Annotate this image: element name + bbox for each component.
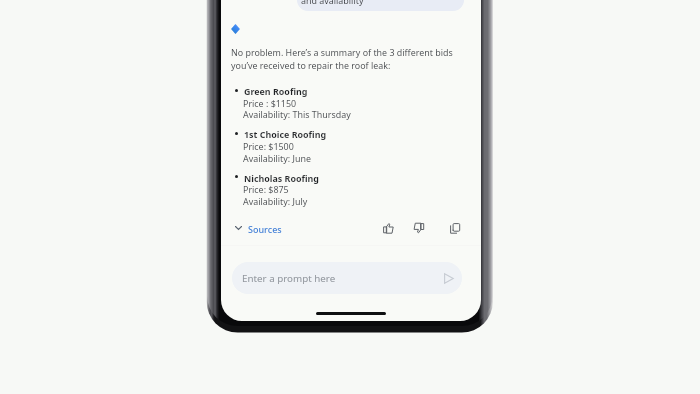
button[interactable]: Thumbs down — [409, 219, 427, 237]
staticText: Sources — [248, 223, 282, 235]
button[interactable]: Sources — [231, 220, 287, 238]
button[interactable]: Send — [439, 269, 457, 287]
button[interactable]: Copy — [446, 219, 464, 237]
staticText: and availability — [301, 0, 364, 6]
staticText: Green Roofing — [244, 85, 308, 97]
staticText: Nicholas Roofing — [244, 172, 319, 184]
staticText: Price: $875 — [243, 183, 289, 195]
button[interactable]: Enter a prompt here — [232, 262, 462, 294]
staticText: No problem. Here’s a summary of the 3 di… — [231, 46, 463, 71]
staticText: Price: $1500 — [243, 140, 294, 152]
button[interactable]: Thumbs up — [379, 219, 397, 237]
staticText: Availability: July — [243, 195, 308, 207]
staticText: 1st Choice Roofing — [244, 128, 327, 140]
staticText: Availability: June — [243, 152, 311, 164]
staticText: Availability: This Thursday — [243, 108, 351, 120]
staticText: Price : $1150 — [243, 97, 297, 109]
staticText: Enter a prompt here — [242, 272, 336, 285]
